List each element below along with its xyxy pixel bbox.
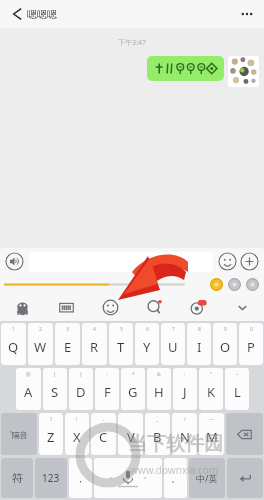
staticText: . bbox=[130, 416, 132, 423]
staticText: , bbox=[103, 416, 105, 423]
staticText: P bbox=[247, 338, 255, 356]
staticText: ( bbox=[54, 371, 56, 378]
button[interactable]: / bbox=[172, 413, 197, 455]
button[interactable] bbox=[147, 56, 224, 81]
button[interactable]: Comma bbox=[69, 458, 92, 498]
button[interactable]: 3 bbox=[55, 323, 80, 365]
staticText: @ bbox=[26, 371, 31, 378]
staticText: 7 bbox=[172, 326, 175, 333]
button[interactable]: ( bbox=[43, 368, 67, 410]
button[interactable]: Back bbox=[6, 3, 28, 25]
button[interactable]: 0 bbox=[239, 323, 263, 365]
button[interactable]: Reward bbox=[210, 278, 223, 291]
staticText: W bbox=[34, 338, 47, 356]
button[interactable]: More functions bbox=[240, 252, 259, 271]
button[interactable]: Avatar bbox=[228, 56, 259, 87]
staticText: 1 bbox=[12, 326, 15, 333]
button[interactable]: Skins bbox=[176, 294, 220, 321]
staticText: 0 bbox=[250, 326, 253, 333]
button[interactable]: — bbox=[199, 413, 224, 455]
button[interactable] bbox=[29, 252, 213, 272]
button[interactable]: Keyboard layout bbox=[44, 294, 88, 321]
staticText: A bbox=[24, 383, 33, 401]
button[interactable]: 中/英 bbox=[189, 458, 225, 498]
button[interactable]: & bbox=[147, 368, 171, 410]
button[interactable]: 9 bbox=[213, 323, 237, 365]
button[interactable]: ~ bbox=[225, 368, 249, 410]
button[interactable]: . bbox=[118, 413, 143, 455]
button[interactable]: 6 bbox=[135, 323, 159, 365]
button[interactable]: @ bbox=[16, 368, 41, 410]
staticText: 5 bbox=[120, 326, 123, 333]
button[interactable]: : bbox=[173, 368, 197, 410]
staticText: Q bbox=[8, 338, 19, 356]
staticText: " bbox=[210, 371, 213, 378]
button[interactable]: Enter bbox=[227, 458, 263, 498]
button[interactable]: , bbox=[91, 413, 116, 455]
staticText: '隔音 bbox=[10, 429, 28, 440]
staticText: 8 bbox=[198, 326, 201, 333]
button[interactable]: Space bbox=[94, 458, 162, 498]
button[interactable]: Voice input bbox=[5, 252, 24, 271]
button[interactable]: 4 bbox=[82, 323, 107, 365]
staticText: F bbox=[104, 383, 111, 401]
staticText: — bbox=[209, 416, 215, 423]
staticText: C bbox=[99, 428, 108, 446]
staticText: U bbox=[168, 338, 178, 356]
button[interactable]: 1 bbox=[1, 323, 26, 365]
button[interactable]: '隔音 bbox=[1, 413, 37, 455]
button[interactable]: ? bbox=[39, 413, 63, 455]
button[interactable]: 符 bbox=[1, 458, 33, 498]
button[interactable]: Previous page bbox=[228, 278, 241, 291]
staticText: L bbox=[234, 383, 241, 401]
button[interactable]: Emoji panel bbox=[88, 294, 132, 321]
staticText: K bbox=[207, 383, 216, 401]
staticText: _ bbox=[156, 416, 159, 423]
staticText: J bbox=[183, 383, 187, 401]
staticText: O bbox=[220, 338, 231, 356]
staticText: N bbox=[180, 428, 190, 446]
staticText: D bbox=[76, 383, 86, 401]
button[interactable]: * bbox=[121, 368, 145, 410]
button[interactable]: Next page bbox=[246, 278, 259, 291]
staticText: ~ bbox=[236, 371, 239, 378]
staticText: G bbox=[128, 383, 138, 401]
button[interactable]: More options bbox=[236, 3, 258, 25]
staticText: : bbox=[184, 371, 186, 378]
staticText: X bbox=[73, 428, 81, 446]
button[interactable]: " bbox=[199, 368, 223, 410]
staticText: E bbox=[64, 338, 72, 356]
staticText: H bbox=[154, 383, 164, 401]
button[interactable]: Period bbox=[164, 458, 187, 498]
staticText: I bbox=[197, 338, 202, 356]
button[interactable]: Emoji bbox=[218, 252, 237, 271]
staticText: T bbox=[117, 338, 125, 356]
staticText: 2 bbox=[39, 326, 42, 333]
button[interactable]: ) bbox=[69, 368, 93, 410]
button[interactable]: 5 bbox=[109, 323, 133, 365]
button[interactable]: 8 bbox=[187, 323, 211, 365]
staticText: ) bbox=[80, 371, 82, 378]
staticText: M bbox=[206, 428, 218, 446]
staticText: 中/英 bbox=[196, 472, 218, 484]
button[interactable]: Backspace bbox=[226, 413, 263, 455]
staticText: S bbox=[51, 383, 59, 401]
button[interactable]: Hide keyboard bbox=[220, 294, 264, 321]
staticText: / bbox=[184, 416, 186, 423]
button[interactable]: 123 bbox=[35, 458, 67, 498]
staticText: - bbox=[106, 371, 108, 378]
staticText: R bbox=[90, 338, 99, 356]
staticText: 。 bbox=[171, 473, 180, 484]
staticText: 4 bbox=[93, 326, 96, 333]
button[interactable]: 7 bbox=[161, 323, 185, 365]
button[interactable]: ! bbox=[65, 413, 89, 455]
staticText: Y bbox=[143, 338, 151, 356]
button[interactable]: - bbox=[95, 368, 119, 410]
button[interactable]: _ bbox=[145, 413, 170, 455]
staticText: B bbox=[153, 428, 162, 446]
staticText: 下午3:47 bbox=[0, 38, 264, 48]
button[interactable]: 2 bbox=[28, 323, 53, 365]
button[interactable]: Sogou keyboard bbox=[0, 294, 44, 321]
button[interactable]: Search bbox=[132, 294, 176, 321]
staticText: 3 bbox=[66, 326, 69, 333]
